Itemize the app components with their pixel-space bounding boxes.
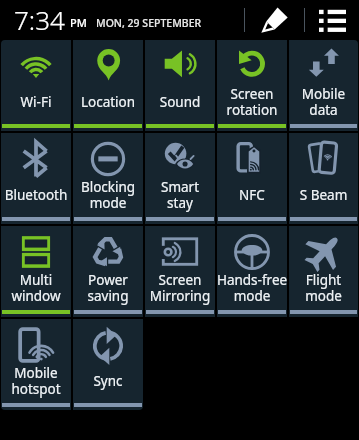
button[interactable]: Screen Mirroring [144, 225, 216, 318]
button[interactable]: Wi-Fi [0, 39, 72, 132]
staticText: Wi-Fi [0, 93, 72, 111]
staticText: Sync [72, 372, 144, 390]
button[interactable]: Blocking mode [72, 132, 144, 225]
button[interactable]: Hands-free mode [216, 225, 288, 318]
button[interactable]: Settings list [305, 0, 359, 39]
button[interactable]: Sound [144, 39, 216, 132]
staticText: PM [70, 15, 87, 30]
staticText: Mobile data [288, 85, 359, 119]
staticText: Screen Mirroring [144, 271, 216, 305]
staticText: Hands-free mode [216, 271, 288, 305]
staticText: Location [72, 93, 144, 111]
staticText: NFC [216, 186, 288, 204]
staticText: S Beam [288, 186, 359, 204]
button[interactable]: Sync [72, 318, 144, 411]
button[interactable]: Mobile data [288, 39, 359, 132]
button[interactable]: Bluetooth [0, 132, 72, 225]
button[interactable]: Flight mode [288, 225, 359, 318]
button[interactable]: Screen rotation [216, 39, 288, 132]
button[interactable]: NFC [216, 132, 288, 225]
staticText: Bluetooth [0, 186, 72, 204]
button[interactable]: Smart stay [144, 132, 216, 225]
button[interactable]: Mobile hotspot [0, 318, 72, 411]
staticText: Smart stay [144, 178, 216, 212]
staticText: Flight mode [288, 271, 359, 305]
button[interactable]: Multi window [0, 225, 72, 318]
staticText: 7:34 [14, 2, 65, 37]
button[interactable]: Edit quick settings [245, 0, 304, 39]
staticText: Sound [144, 93, 216, 111]
button[interactable]: S Beam [288, 132, 359, 225]
staticText: Blocking mode [72, 178, 144, 212]
button[interactable]: Location [72, 39, 144, 132]
staticText: Power saving [72, 271, 144, 305]
button[interactable]: Power saving [72, 225, 144, 318]
staticText: Mobile hotspot [0, 364, 72, 398]
staticText: Multi window [0, 271, 72, 305]
staticText: MON, 29 SEPTEMBER [96, 16, 202, 30]
staticText: Screen rotation [216, 85, 288, 119]
